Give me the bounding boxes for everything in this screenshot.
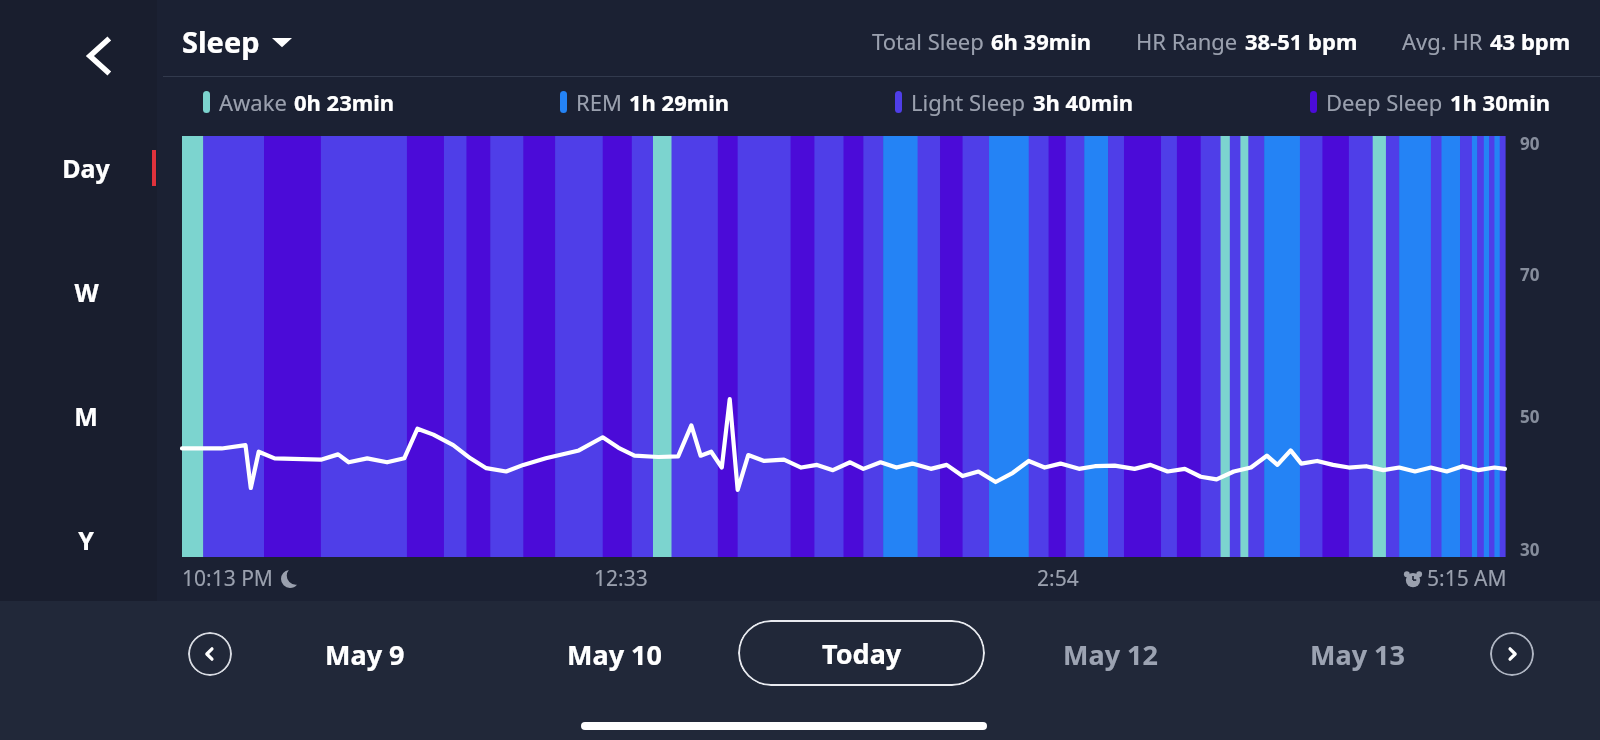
button[interactable]: Awake [203, 87, 395, 117]
staticText: May 9 [325, 636, 405, 673]
button[interactable]: Avg. HR [1402, 26, 1571, 56]
staticText: 6h 39min [991, 26, 1092, 56]
staticText: W [74, 275, 99, 309]
button[interactable]: May 13 [1292, 623, 1422, 685]
button[interactable]: Today [738, 620, 985, 686]
staticText: Y [78, 523, 94, 557]
button[interactable]: M [36, 390, 136, 442]
button[interactable]: Sleep [182, 22, 292, 61]
staticText: 50 [1520, 405, 1540, 428]
staticText: 30 [1520, 538, 1540, 561]
button[interactable]: HR Range [1136, 26, 1358, 56]
button[interactable]: May 9 [300, 623, 430, 685]
staticText: 12:33 [594, 564, 648, 593]
staticText: Sleep [182, 22, 260, 61]
staticText: 3h 40min [1033, 87, 1134, 117]
staticText: 1h 30min [1450, 87, 1551, 117]
staticText: Today [822, 635, 902, 672]
button[interactable]: Deep Sleep [1310, 87, 1551, 117]
staticText: 1h 29min [629, 87, 730, 117]
staticText: 5:15 AM [1427, 564, 1507, 593]
staticText: Total Sleep [872, 26, 984, 56]
button[interactable]: Back [72, 28, 128, 84]
button[interactable]: May 12 [1045, 623, 1175, 685]
button[interactable]: REM [560, 87, 730, 117]
staticText: Awake [219, 87, 287, 117]
button[interactable]: Y [36, 514, 136, 566]
staticText: Light Sleep [911, 87, 1026, 117]
button[interactable]: May 10 [549, 623, 679, 685]
staticText: Avg. HR [1402, 26, 1483, 56]
button[interactable]: Light Sleep [895, 87, 1134, 117]
staticText: Day [62, 151, 110, 185]
staticText: REM [576, 87, 622, 117]
button[interactable]: Day [36, 142, 136, 194]
button[interactable]: W [36, 266, 136, 318]
button[interactable]: Next day [1490, 632, 1534, 676]
staticText: 90 [1520, 132, 1540, 155]
staticText: 10:13 PM [182, 564, 273, 593]
staticText: May 13 [1310, 636, 1405, 673]
button[interactable]: Total Sleep [872, 26, 1092, 56]
staticText: Deep Sleep [1326, 87, 1443, 117]
staticText: May 10 [567, 636, 662, 673]
staticText: 2:54 [1037, 564, 1079, 593]
staticText: 70 [1520, 263, 1540, 286]
staticText: 0h 23min [294, 87, 395, 117]
button[interactable]: Previous day [188, 632, 232, 676]
staticText: HR Range [1136, 26, 1238, 56]
staticText: 38-51 bpm [1245, 26, 1358, 56]
staticText: M [74, 399, 98, 433]
staticText: 43 bpm [1490, 26, 1571, 56]
staticText: May 12 [1063, 636, 1158, 673]
